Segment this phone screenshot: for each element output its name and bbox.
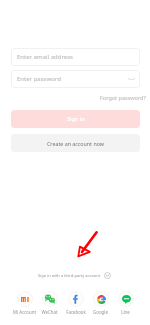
staticText: WeChat [41, 309, 58, 315]
staticText: Sign in [67, 115, 85, 123]
staticText: Enter password [17, 75, 61, 83]
button[interactable]: Sign in with a third-party account [36, 270, 113, 281]
staticText: Sign in with a third-party account [38, 273, 101, 278]
staticText: Enter email address [17, 53, 73, 61]
button[interactable]: Enter password [11, 70, 140, 88]
staticText: Facebook [66, 309, 86, 315]
button[interactable]: Mi Account [12, 291, 37, 315]
staticText: Google [93, 309, 108, 315]
button[interactable]: WeChat [37, 291, 62, 315]
button[interactable]: Enter email address [11, 48, 140, 66]
staticText: Create an account now [47, 140, 104, 147]
staticText: Forgot password? [100, 94, 146, 101]
button[interactable]: Google [88, 291, 113, 315]
staticText: Mi Account [13, 309, 36, 315]
button[interactable]: Forgot password? [100, 94, 146, 101]
staticText: Line [121, 309, 130, 315]
button[interactable]: Facebook [63, 291, 88, 315]
button[interactable]: Sign in [11, 110, 140, 128]
button[interactable]: Line [113, 291, 138, 315]
button[interactable]: Show password [126, 74, 137, 85]
button[interactable]: Create an account now [11, 134, 140, 152]
